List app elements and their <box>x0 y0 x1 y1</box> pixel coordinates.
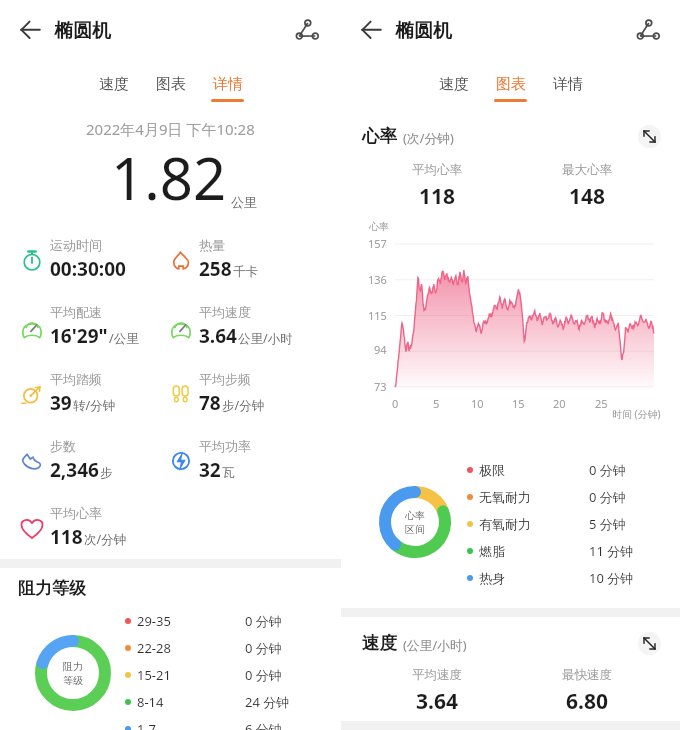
staticText: /公里 <box>109 330 139 347</box>
staticText: 8-14 <box>137 693 164 711</box>
button[interactable]: 详情 <box>199 56 256 104</box>
staticText: 3.64 <box>416 687 458 716</box>
staticText: 2,346 <box>50 457 99 483</box>
button[interactable]: Share <box>635 17 661 43</box>
staticText: 阻力等级 <box>18 578 86 599</box>
staticText: 无氧耐力 <box>479 489 531 505</box>
staticText: 94 <box>374 342 387 357</box>
staticText: 步/分钟 <box>222 397 265 414</box>
staticText: 39 <box>50 390 72 416</box>
staticText: 157 <box>368 236 387 251</box>
button[interactable]: 速度 <box>425 56 482 104</box>
staticText: 5 <box>433 396 440 411</box>
staticText: 等级 <box>63 674 83 687</box>
staticText: 20 <box>553 396 566 411</box>
staticText: 15 <box>512 396 525 411</box>
staticText: 心率 <box>362 125 397 147</box>
staticText: 6 分钟 <box>245 720 282 730</box>
button[interactable]: 速度 <box>85 56 142 104</box>
staticText: 最大心率 <box>562 162 612 178</box>
staticText: 148 <box>569 182 606 211</box>
staticText: 11 分钟 <box>589 542 634 560</box>
staticText: 瓦 <box>222 465 235 481</box>
staticText: 118 <box>50 524 83 550</box>
staticText: 25 <box>595 396 608 411</box>
staticText: 平均速度 <box>412 667 462 683</box>
staticText: 15-21 <box>137 666 171 684</box>
staticText: 平均步频 <box>199 371 251 387</box>
staticText: 1.82 <box>111 138 227 217</box>
staticText: 图表 <box>496 75 526 94</box>
staticText: 运动时间 <box>50 237 102 253</box>
staticText: 73 <box>374 379 387 394</box>
staticText: 心率 <box>369 220 389 233</box>
staticText: 椭圆机 <box>395 19 452 43</box>
staticText: 78 <box>199 390 221 416</box>
staticText: 6.80 <box>566 687 608 716</box>
staticText: 平均功率 <box>199 438 251 454</box>
staticText: 5 分钟 <box>589 515 626 533</box>
staticText: 0 分钟 <box>245 612 282 630</box>
staticText: 速度 <box>99 75 129 94</box>
staticText: 22-28 <box>137 639 171 657</box>
staticText: 平均心率 <box>50 505 102 521</box>
staticText: 阻力 <box>63 660 83 673</box>
staticText: (公里/小时) <box>403 636 467 653</box>
staticText: 0 分钟 <box>589 461 626 479</box>
staticText: 速度 <box>439 75 469 94</box>
staticText: 115 <box>368 308 387 323</box>
button[interactable]: Share <box>294 17 320 43</box>
staticText: 10 <box>471 396 484 411</box>
staticText: 公里/小时 <box>238 330 293 347</box>
button[interactable]: 图表 <box>142 56 199 104</box>
button[interactable]: Back <box>20 20 42 42</box>
button[interactable]: Expand <box>638 632 661 655</box>
staticText: 118 <box>419 182 456 211</box>
staticText: 详情 <box>213 75 243 94</box>
staticText: 3.64 <box>199 323 237 349</box>
staticText: 转/分钟 <box>73 397 116 414</box>
staticText: 2022年4月9日 下午10:28 <box>86 119 255 139</box>
staticText: 29-35 <box>137 612 171 630</box>
staticText: 最快速度 <box>562 667 612 683</box>
staticText: 有氧耐力 <box>479 516 531 532</box>
staticText: 平均踏频 <box>50 371 102 387</box>
staticText: 0 分钟 <box>589 488 626 506</box>
staticText: 详情 <box>553 75 583 94</box>
staticText: 公里 <box>231 194 257 210</box>
button[interactable]: Back <box>361 20 383 42</box>
staticText: 1-7 <box>137 720 157 730</box>
button[interactable]: 图表 <box>482 56 539 104</box>
staticText: 步数 <box>50 438 76 454</box>
staticText: 步 <box>100 465 113 481</box>
staticText: 区间 <box>405 523 425 536</box>
staticText: 椭圆机 <box>54 19 111 43</box>
staticText: 速度 <box>362 632 397 654</box>
staticText: 0 分钟 <box>245 639 282 657</box>
staticText: 258 <box>199 256 232 282</box>
staticText: 时间 (分钟) <box>612 407 661 421</box>
button[interactable]: Expand <box>638 125 661 148</box>
staticText: 次/分钟 <box>84 531 127 548</box>
staticText: 热身 <box>479 570 505 586</box>
staticText: 24 分钟 <box>245 693 290 711</box>
staticText: (次/分钟) <box>403 129 454 146</box>
staticText: 千卡 <box>233 264 258 280</box>
staticText: 心率 <box>405 509 425 522</box>
staticText: 00:30:00 <box>50 256 126 282</box>
staticText: 0 <box>392 396 399 411</box>
button[interactable]: 详情 <box>539 56 596 104</box>
staticText: 平均速度 <box>199 304 251 320</box>
staticText: 图表 <box>156 75 186 94</box>
staticText: 平均心率 <box>412 162 462 178</box>
staticText: 平均配速 <box>50 304 102 320</box>
staticText: 32 <box>199 457 221 483</box>
staticText: 0 分钟 <box>245 666 282 684</box>
staticText: 燃脂 <box>479 543 505 559</box>
staticText: 热量 <box>199 237 225 253</box>
staticText: 136 <box>368 272 387 287</box>
staticText: 10 分钟 <box>589 569 634 587</box>
staticText: 极限 <box>479 462 505 478</box>
staticText: 16'29" <box>50 323 108 349</box>
